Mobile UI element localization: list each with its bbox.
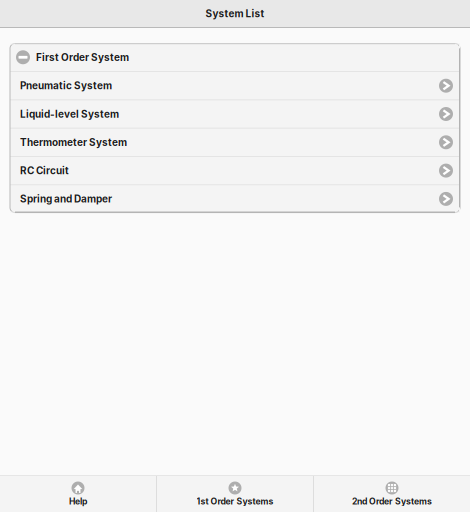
staticText: 1st Order Systems: [196, 496, 273, 506]
button[interactable]: Pneumatic System: [10, 72, 460, 99]
button[interactable]: Liquid-level System: [10, 100, 460, 128]
staticText: Pneumatic System: [20, 80, 112, 92]
staticText: Spring and Damper: [20, 193, 112, 205]
button[interactable]: 1st Order Systems: [157, 476, 313, 512]
button[interactable]: 2nd Order Systems: [314, 476, 470, 512]
staticText: Help: [69, 496, 87, 506]
button[interactable]: First Order System: [10, 43, 460, 71]
staticText: Liquid-level System: [20, 108, 119, 120]
staticText: RC Circuit: [20, 165, 69, 177]
button[interactable]: Thermometer System: [10, 129, 460, 156]
button[interactable]: Help: [0, 476, 156, 512]
button[interactable]: Spring and Damper: [10, 185, 460, 212]
staticText: First Order System: [36, 51, 129, 63]
button[interactable]: RC Circuit: [10, 157, 460, 184]
staticText: System List: [205, 7, 264, 20]
staticText: 2nd Order Systems: [352, 496, 432, 506]
staticText: Thermometer System: [20, 136, 127, 148]
